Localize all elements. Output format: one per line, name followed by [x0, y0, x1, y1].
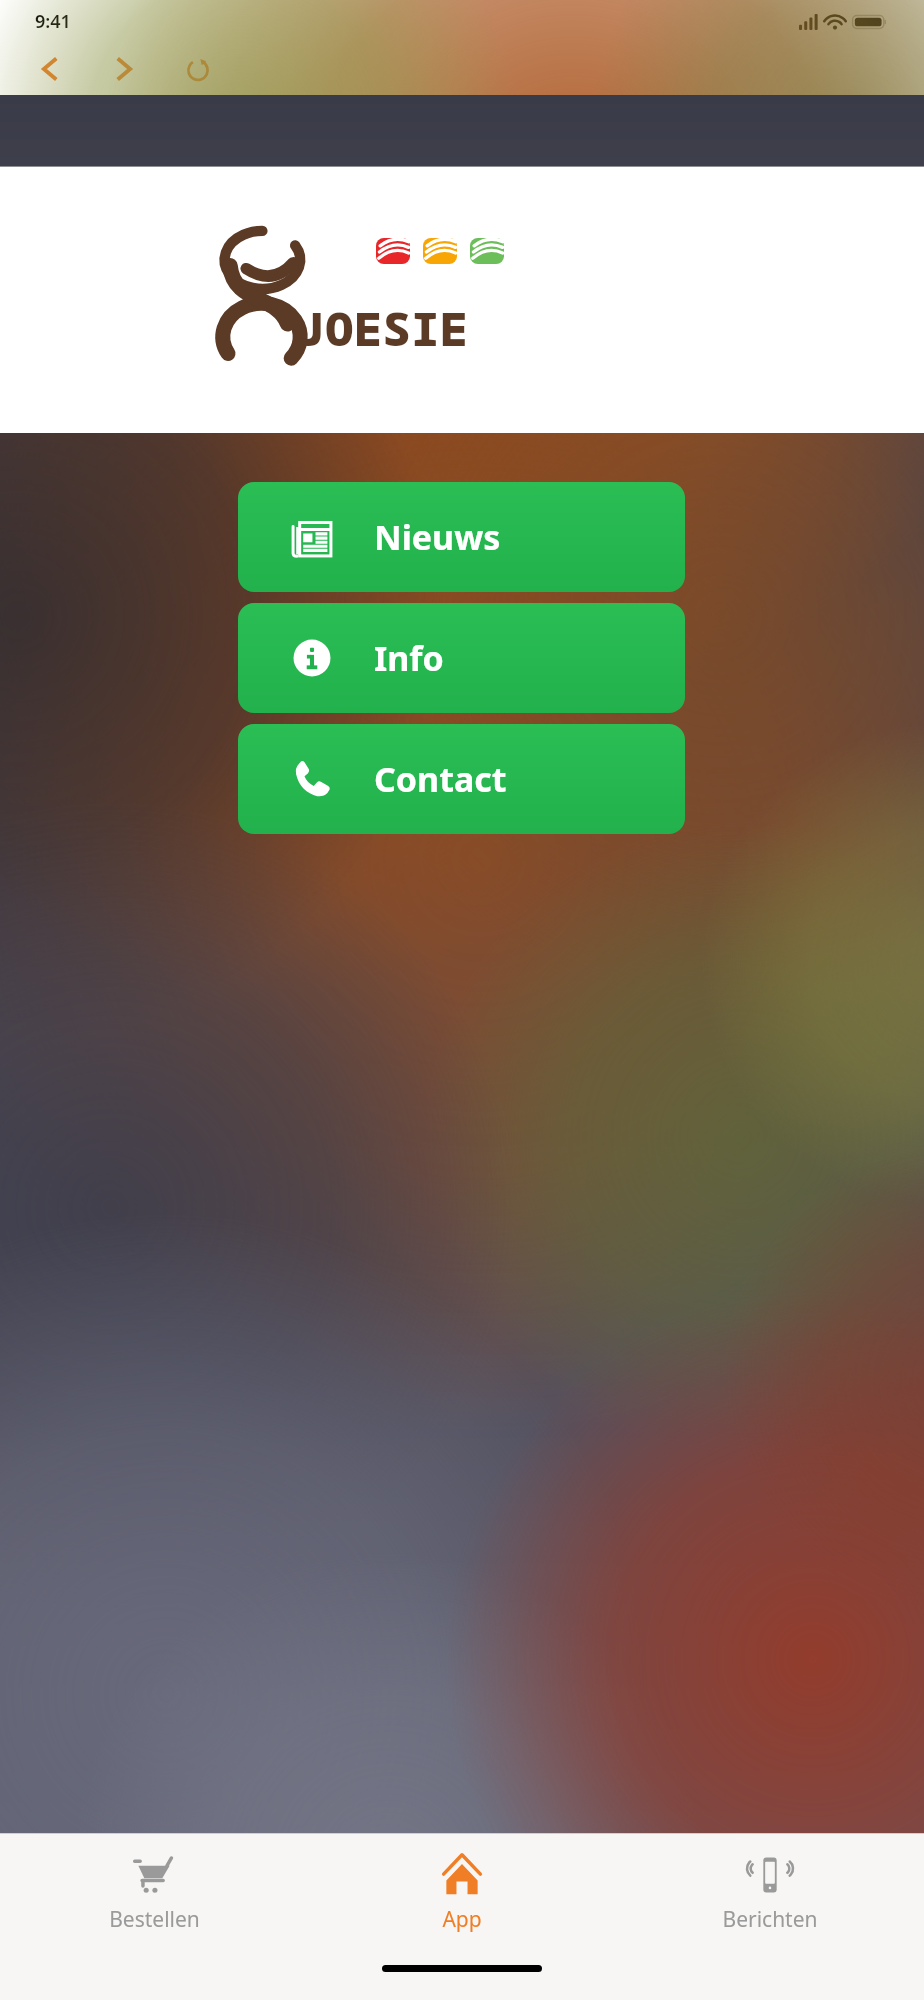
staticText: 9:41: [35, 9, 71, 34]
button[interactable]: Reload: [172, 43, 224, 95]
button[interactable]: Back: [24, 43, 76, 95]
staticText: App: [442, 1905, 482, 1934]
staticText: Contact: [374, 756, 507, 802]
button[interactable]: Berichten: [616, 1834, 924, 1952]
button[interactable]: Contact: [238, 724, 685, 834]
staticText: Berichten: [722, 1905, 818, 1934]
button[interactable]: Bestellen: [0, 1834, 308, 1952]
staticText: Info: [374, 635, 444, 681]
button[interactable]: Nieuws: [238, 482, 685, 592]
button[interactable]: Info: [238, 603, 685, 713]
staticText: Bestellen: [109, 1905, 200, 1934]
staticText: JOESIE: [297, 297, 469, 360]
staticText: Nieuws: [374, 514, 501, 560]
button[interactable]: Forward: [98, 43, 150, 95]
button[interactable]: App: [308, 1834, 616, 1952]
